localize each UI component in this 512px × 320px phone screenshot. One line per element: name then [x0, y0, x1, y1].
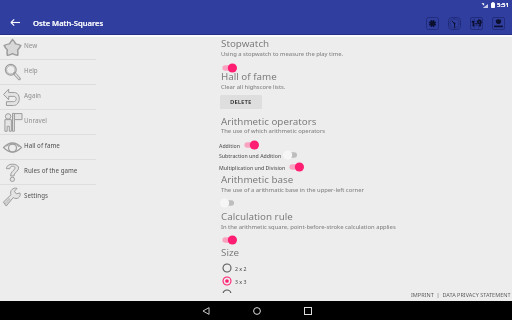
button[interactable]: Rules of the game [0, 160, 205, 185]
button[interactable]: Back [0, 10, 30, 35]
staticText: In the arithmetic square, point-before-s… [221, 223, 396, 231]
button[interactable]: 2 x 2 [222, 263, 247, 273]
staticText: IMPRINT | DATA PRIVACY STATEMENT [411, 291, 511, 298]
button[interactable]: DELETE [220, 95, 262, 109]
button[interactable]: Addition [219, 140, 259, 150]
staticText: Multiplication und Division [219, 164, 286, 171]
staticText: 5:51 [497, 1, 509, 9]
staticText: Arithmetic operators [221, 115, 317, 128]
staticText: Arithmetic base [221, 173, 294, 186]
button[interactable]: Stopwatch [443, 11, 465, 35]
staticText: 3 x 3 [235, 278, 247, 285]
button[interactable]: 3 x 3 [222, 276, 247, 286]
staticText: Unravel [24, 116, 47, 124]
button[interactable]: Again [0, 85, 205, 110]
button[interactable]: Recents [298, 301, 317, 320]
button[interactable] [221, 235, 237, 245]
staticText: Subtraction und Addition [219, 152, 282, 159]
button[interactable]: IMPRINT | DATA PRIVACY STATEMENT [411, 291, 511, 298]
button[interactable]: Settings [0, 185, 205, 210]
staticText: DELETE [230, 98, 252, 106]
staticText: Rules of the game [24, 166, 78, 174]
staticText: Help [24, 66, 38, 74]
button[interactable]: 4 x 4 [222, 289, 247, 293]
button[interactable]: Hall of fame [0, 135, 205, 160]
staticText: Calculation rule [221, 210, 293, 223]
staticText: Settings [24, 191, 49, 199]
staticText: Addition [219, 142, 241, 149]
button[interactable] [221, 198, 237, 208]
staticText: Stopwatch [221, 37, 270, 50]
staticText: Clear all highscore lists. [221, 83, 286, 91]
button[interactable]: Home [247, 301, 266, 320]
staticText: New [24, 41, 38, 49]
staticText: Hall of fame [24, 141, 60, 149]
staticText: The use of which arithmetic operators [221, 127, 326, 135]
staticText: Oste Math-Squares [33, 18, 104, 28]
button[interactable]: Multiplication und Division [219, 162, 304, 172]
button[interactable] [221, 63, 237, 73]
button[interactable]: Unravel [0, 110, 205, 135]
button[interactable]: New [0, 35, 205, 60]
button[interactable]: Back [196, 301, 215, 320]
button[interactable]: Subtraction und Addition [219, 150, 300, 160]
button[interactable]: Help [0, 60, 205, 85]
staticText: Size [221, 246, 240, 259]
button[interactable]: New game [421, 11, 443, 35]
staticText: The use of a arithmatic base in the uppe… [221, 186, 364, 194]
staticText: Hall of fame [221, 70, 277, 83]
button[interactable]: Numbers [465, 11, 487, 35]
staticText: Using a stopwatch to measure the play ti… [221, 50, 344, 58]
button[interactable]: Profile [487, 11, 509, 35]
staticText: 2 x 2 [235, 265, 247, 272]
staticText: Again [24, 91, 41, 99]
